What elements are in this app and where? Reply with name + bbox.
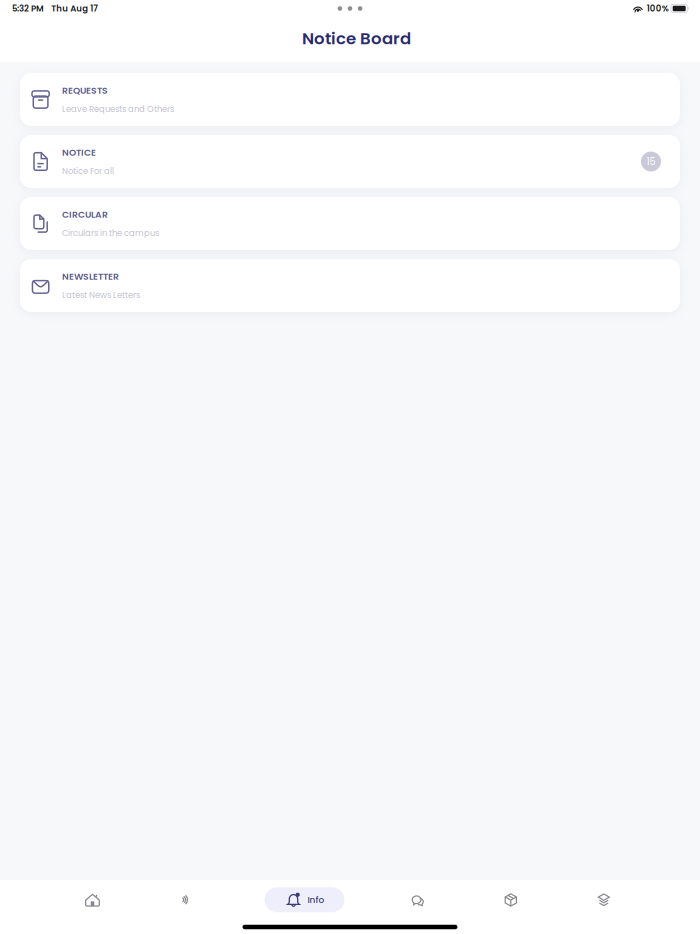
staticText: NEWSLETTER [62,270,119,283]
staticText: 100% [647,2,669,14]
staticText: Circulars in the campus [62,227,159,239]
staticText: Latest News Letters [62,289,140,301]
button[interactable]: REQUESTS [20,73,680,126]
staticText: Notice For all [62,165,114,177]
button[interactable]: Messages [402,880,434,920]
button[interactable]: Home [76,880,108,920]
staticText: 5:32 PM [12,2,44,14]
staticText: Info [307,893,324,906]
button[interactable]: Broadcast [169,880,201,920]
button[interactable]: Layers [588,880,620,920]
staticText: Leave Requests and Others [62,103,174,115]
button[interactable]: Info [264,887,344,912]
staticText: NOTICE [62,146,96,159]
button[interactable]: NOTICE [20,135,680,188]
button[interactable]: CIRCULAR [20,197,680,250]
staticText: CIRCULAR [62,208,108,221]
staticText: Notice Board [302,27,411,50]
button[interactable]: NEWSLETTER [20,259,680,312]
staticText: Thu Aug 17 [51,2,98,14]
staticText: REQUESTS [62,84,108,97]
staticText: 15 [646,155,655,168]
button[interactable]: Packages [495,880,527,920]
